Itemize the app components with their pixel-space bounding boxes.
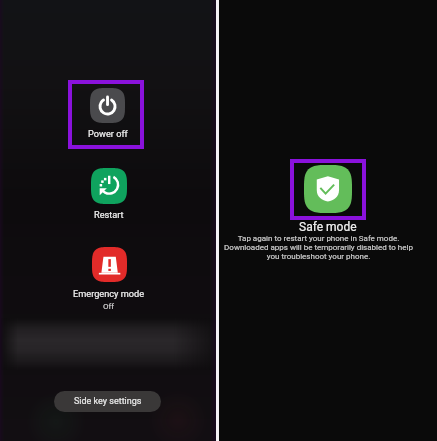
button[interactable]: Emergency mode bbox=[38, 247, 180, 311]
button[interactable]: Restart bbox=[60, 168, 158, 220]
staticText: Tap again to restart your phone in Safe … bbox=[224, 234, 413, 261]
staticText: Safe mode bbox=[299, 220, 357, 234]
button[interactable]: Side key settings bbox=[54, 391, 161, 412]
button[interactable]: Safe mode bbox=[290, 159, 366, 220]
staticText: Restart bbox=[94, 209, 124, 220]
button[interactable]: Power off bbox=[68, 80, 144, 149]
staticText: Side key settings bbox=[74, 396, 142, 407]
staticText: Off bbox=[103, 302, 115, 311]
staticText: Emergency mode bbox=[73, 288, 145, 299]
staticText: Power off bbox=[88, 128, 128, 139]
